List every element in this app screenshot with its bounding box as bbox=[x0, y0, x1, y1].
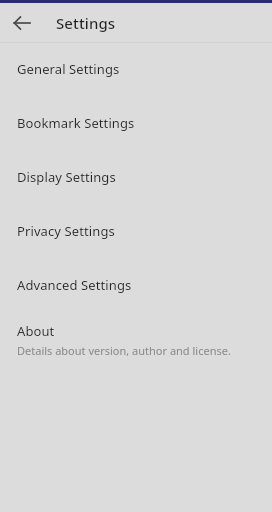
staticText: About bbox=[17, 322, 55, 340]
button[interactable]: General Settings bbox=[0, 51, 272, 87]
staticText: Details about version, author and licens… bbox=[17, 343, 231, 358]
staticText: Settings bbox=[56, 13, 116, 33]
button[interactable]: Back bbox=[12, 13, 32, 33]
staticText: General Settings bbox=[17, 60, 120, 78]
staticText: Bookmark Settings bbox=[17, 114, 135, 132]
staticText: Display Settings bbox=[17, 168, 116, 186]
staticText: Privacy Settings bbox=[17, 222, 115, 240]
button[interactable]: Advanced Settings bbox=[0, 267, 272, 303]
button[interactable]: Display Settings bbox=[0, 159, 272, 195]
staticText: Advanced Settings bbox=[17, 276, 132, 294]
button[interactable]: Privacy Settings bbox=[0, 213, 272, 249]
button[interactable]: Bookmark Settings bbox=[0, 105, 272, 141]
button[interactable]: About bbox=[0, 313, 272, 367]
